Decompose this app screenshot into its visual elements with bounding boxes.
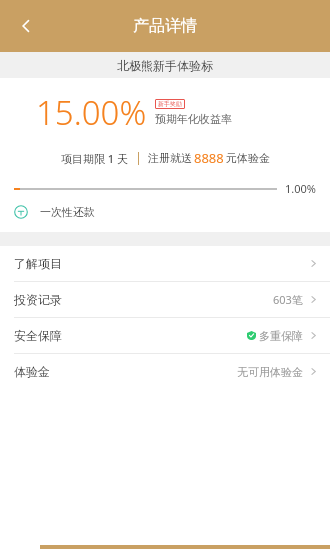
staticText: 安全保障 — [14, 328, 62, 343]
staticText: 了解项目 — [14, 256, 62, 271]
button[interactable]: Back — [6, 6, 46, 46]
staticText: 元体验金 — [226, 151, 270, 165]
staticText: 15.00% — [36, 90, 147, 135]
staticText: 体验金 — [14, 364, 50, 379]
staticText: 一次性还款 — [40, 205, 95, 219]
staticText: 项目期限 1 天 — [61, 151, 129, 166]
staticText: 注册就送 — [148, 151, 192, 165]
staticText: 无可用体验金 — [237, 365, 303, 379]
button[interactable]: 体验金 — [0, 354, 330, 389]
staticText: 8888 — [194, 149, 224, 167]
staticText: 北极熊新手体验标 — [117, 58, 213, 73]
staticText: 多重保障 — [259, 329, 303, 343]
button[interactable]: 安全保障 — [0, 318, 330, 353]
button[interactable]: 投资记录 — [0, 282, 330, 317]
staticText: 603笔 — [273, 292, 303, 307]
staticText: 新手奖励 — [158, 100, 182, 108]
staticText: 产品详情 — [133, 16, 197, 36]
staticText: 1.00% — [285, 181, 316, 196]
staticText: 预期年化收益率 — [155, 112, 232, 126]
staticText: 投资记录 — [14, 292, 62, 307]
button[interactable]: 了解项目 — [0, 246, 330, 281]
